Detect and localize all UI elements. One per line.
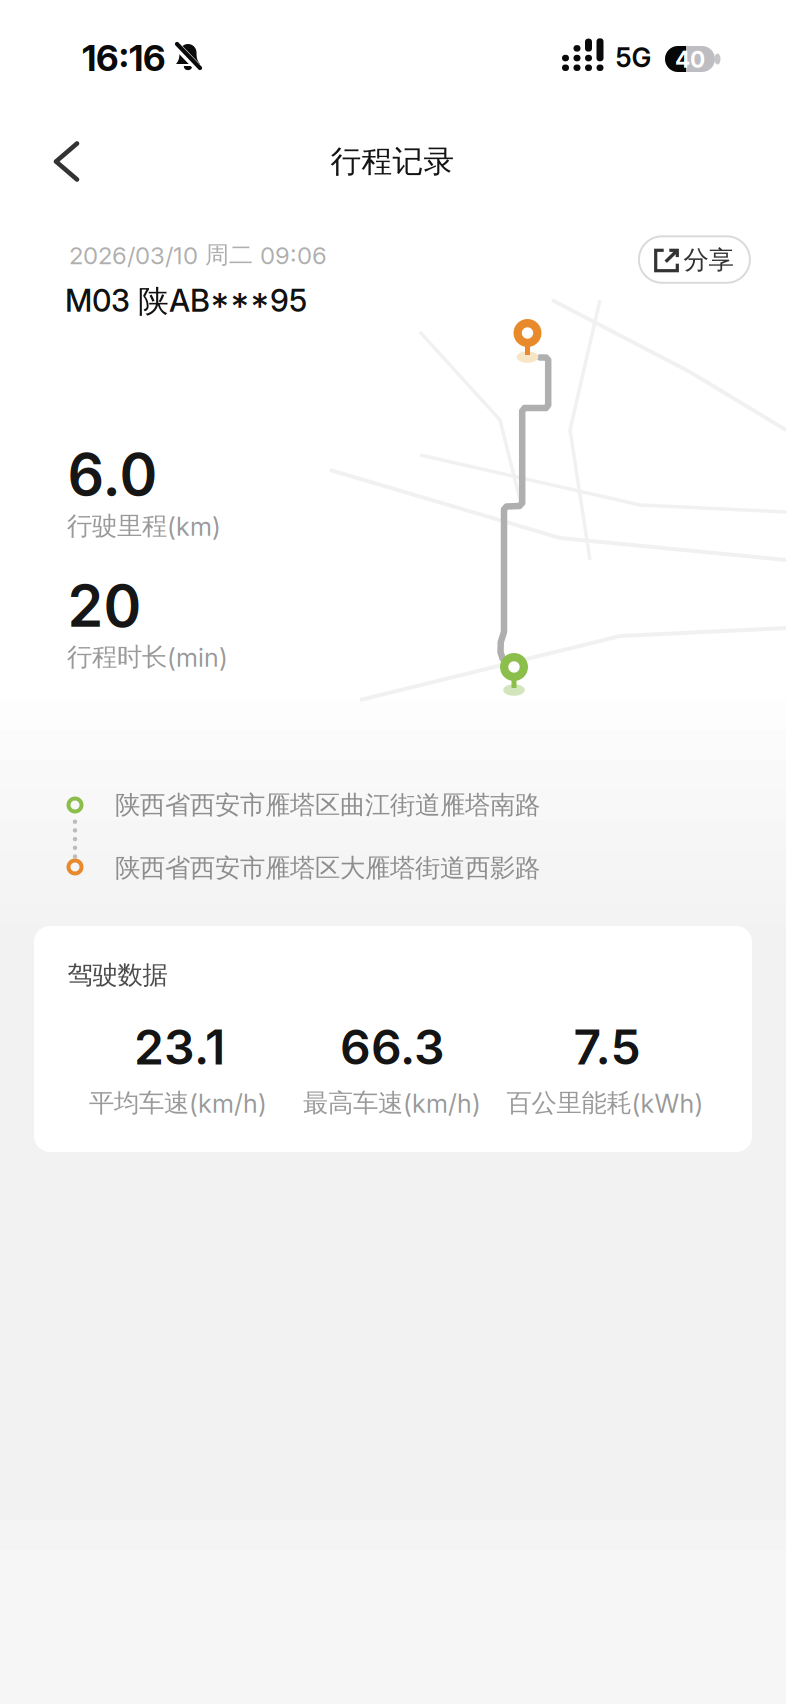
staticText: 5G bbox=[615, 42, 651, 73]
staticText: 行程记录 bbox=[330, 143, 454, 180]
staticText: 23.1 bbox=[134, 1019, 225, 1075]
staticText: 20 bbox=[67, 572, 141, 640]
staticText: 16:16 bbox=[82, 37, 166, 79]
staticText: 陕西省西安市雁塔区大雁塔街道西影路 bbox=[115, 852, 540, 883]
staticText: 行驶里程(km) bbox=[67, 510, 221, 541]
staticText: 7.5 bbox=[573, 1019, 640, 1075]
button[interactable]: Back bbox=[0, 0, 110, 76]
staticText: 40 bbox=[675, 46, 705, 73]
staticText: 陕西省西安市雁塔区曲江街道雁塔南路 bbox=[115, 789, 540, 820]
staticText: M03 陕AB***95 bbox=[65, 283, 307, 320]
staticText: 66.3 bbox=[340, 1019, 445, 1075]
staticText: 平均车速(km/h) bbox=[89, 1087, 267, 1118]
staticText: 最高车速(km/h) bbox=[303, 1087, 481, 1118]
staticText: 驾驶数据 bbox=[67, 959, 167, 990]
staticText: 行程时长(min) bbox=[67, 641, 228, 672]
staticText: 百公里能耗(kWh) bbox=[506, 1087, 703, 1118]
staticText: 分享 bbox=[683, 244, 733, 275]
staticText: 6.0 bbox=[67, 441, 157, 508]
staticText: 2026/03/10 周二 09:06 bbox=[69, 240, 327, 270]
button[interactable]: 分享 bbox=[638, 235, 751, 284]
